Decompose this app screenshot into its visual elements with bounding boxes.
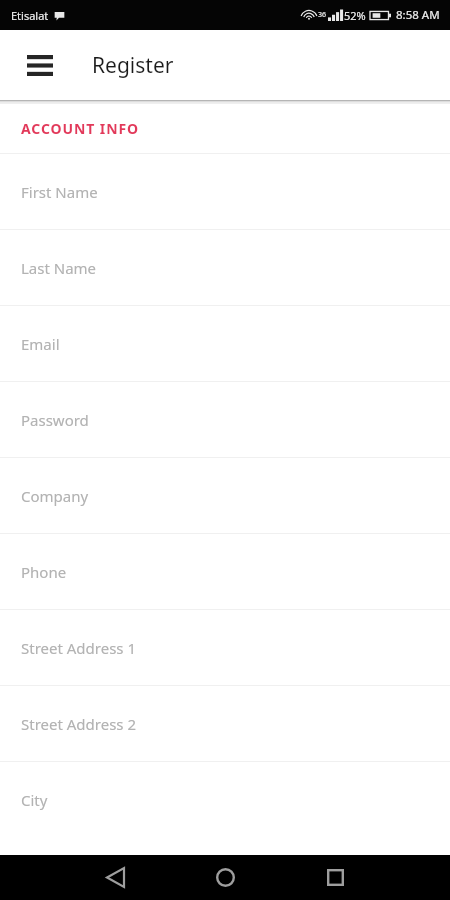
staticText: City [21, 790, 48, 810]
button[interactable]: Password [0, 382, 450, 457]
button[interactable]: First Name [0, 154, 450, 229]
staticText: First Name [21, 182, 98, 202]
button[interactable]: Home [170, 855, 280, 900]
staticText: Company [21, 486, 89, 506]
button[interactable]: Email [0, 306, 450, 381]
staticText: 8:58 AM [396, 7, 440, 23]
staticText: Phone [21, 562, 67, 582]
staticText: Email [21, 334, 60, 354]
button[interactable]: Open navigation menu [16, 41, 64, 89]
button[interactable]: Phone [0, 534, 450, 609]
staticText: Street Address 1 [21, 638, 137, 658]
staticText: Last Name [21, 258, 97, 278]
staticText: Register [92, 51, 174, 80]
button[interactable]: City [0, 762, 450, 837]
button[interactable]: Street Address 2 [0, 686, 450, 761]
staticText: Street Address 2 [21, 714, 137, 734]
staticText: 36 [318, 10, 327, 20]
staticText: 52% [344, 8, 366, 23]
button[interactable]: Back [60, 855, 170, 900]
staticText: Password [21, 410, 89, 430]
staticText: ACCOUNT INFO [21, 119, 139, 138]
button[interactable]: Last Name [0, 230, 450, 305]
button[interactable]: Street Address 1 [0, 610, 450, 685]
button[interactable]: Company [0, 458, 450, 533]
button[interactable]: Recent apps [280, 855, 390, 900]
staticText: Etisalat [11, 8, 49, 23]
